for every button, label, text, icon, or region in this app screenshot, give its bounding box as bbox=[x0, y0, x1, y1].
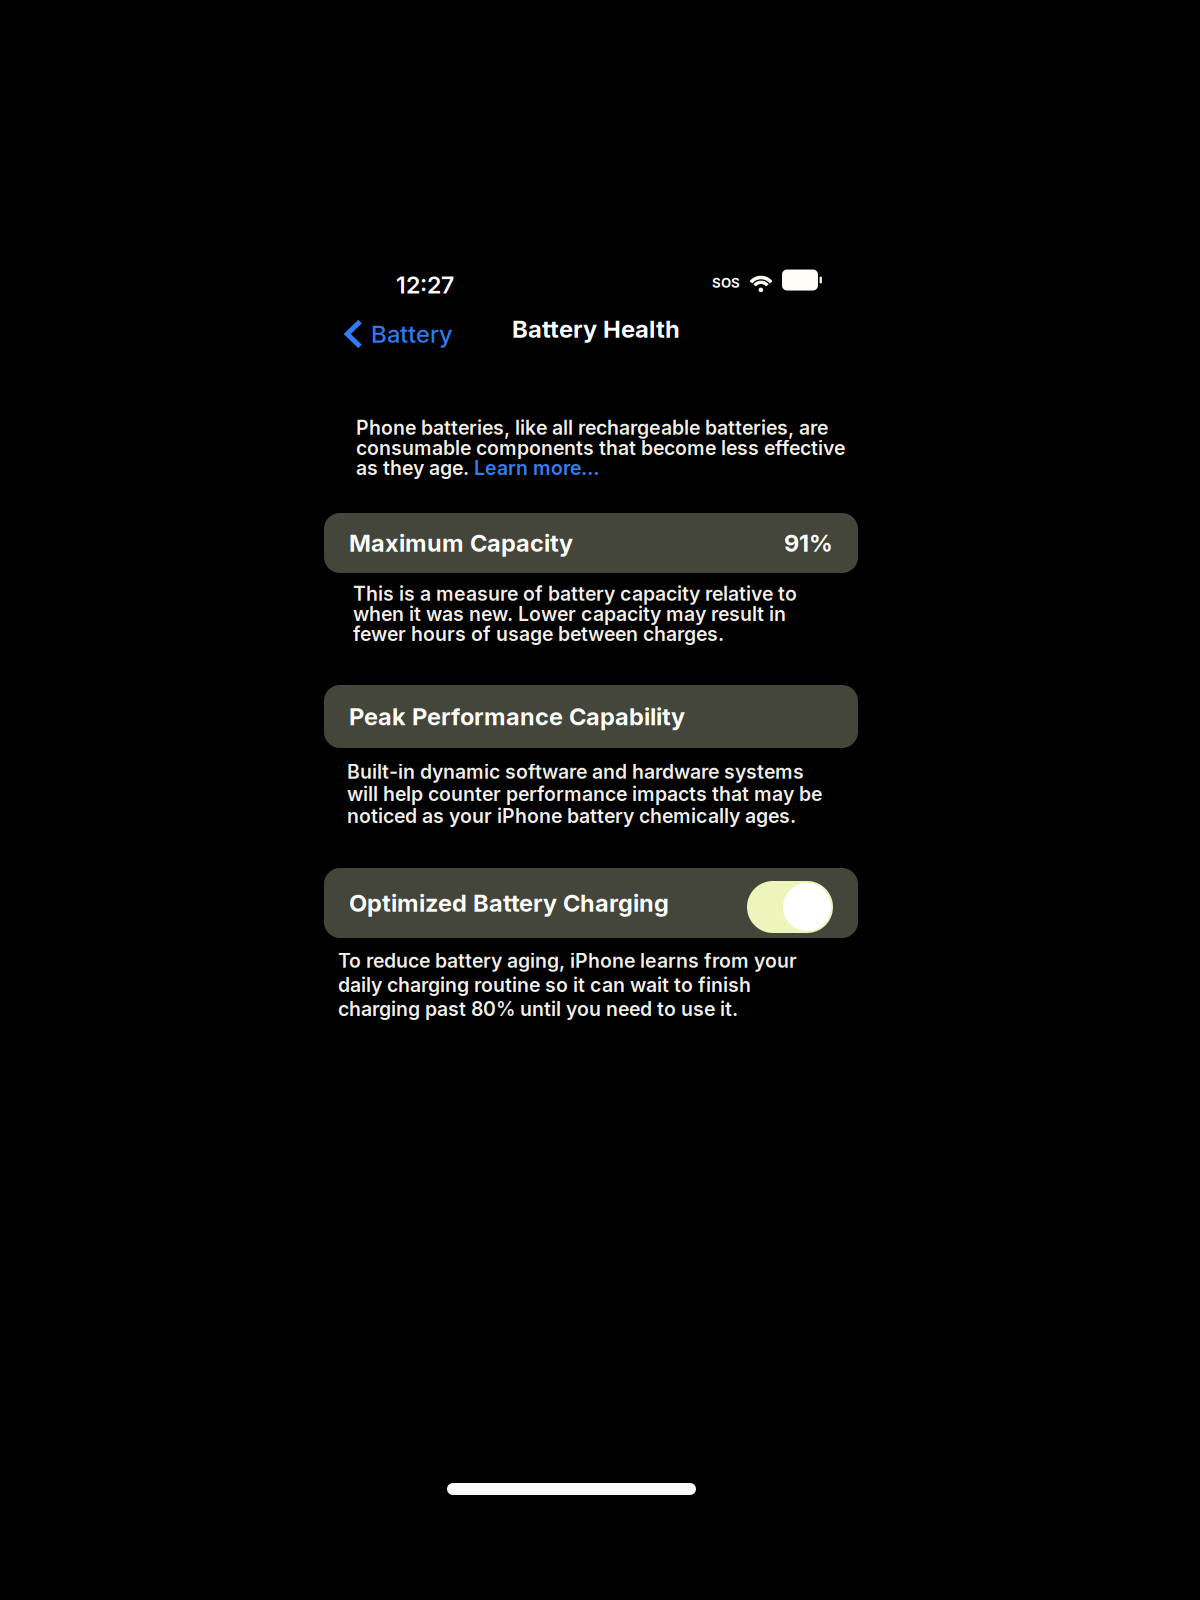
staticText: To reduce battery aging, iPhone learns f… bbox=[338, 949, 797, 973]
staticText: fewer hours of usage between charges. bbox=[353, 622, 724, 646]
staticText: Built-in dynamic software and hardware s… bbox=[347, 760, 804, 784]
staticText: Battery Health bbox=[512, 314, 680, 343]
staticText: This is a measure of battery capacity re… bbox=[353, 582, 797, 606]
button[interactable]: Peak Performance Capability bbox=[324, 685, 858, 748]
staticText: Optimized Battery Charging bbox=[349, 889, 669, 917]
staticText: Maximum Capacity bbox=[349, 529, 573, 557]
staticText: as they age. bbox=[356, 456, 474, 480]
staticText: noticed as your iPhone battery chemicall… bbox=[347, 804, 796, 828]
staticText: when it was new. Lower capacity may resu… bbox=[353, 602, 786, 626]
staticText: consumable components that become less e… bbox=[356, 436, 845, 460]
staticText: charging past 80% until you need to use … bbox=[338, 997, 738, 1021]
button[interactable]: Learn more… bbox=[474, 456, 599, 480]
staticText: daily charging routine so it can wait to… bbox=[338, 973, 751, 997]
staticText: Phone batteries, like all rechargeable b… bbox=[356, 416, 828, 440]
button[interactable]: Battery bbox=[336, 310, 461, 358]
staticText: Peak Performance Capability bbox=[349, 702, 685, 731]
button[interactable]: Maximum Capacity bbox=[324, 513, 858, 573]
staticText: will help counter performance impacts th… bbox=[347, 782, 822, 806]
staticText: Battery bbox=[371, 319, 453, 348]
staticText: 91% bbox=[784, 529, 833, 557]
button[interactable]: Optimized Battery Charging bbox=[747, 881, 833, 933]
staticText: 12:27 bbox=[396, 271, 454, 299]
staticText: SOS bbox=[712, 275, 740, 291]
staticText: Learn more… bbox=[474, 456, 599, 480]
